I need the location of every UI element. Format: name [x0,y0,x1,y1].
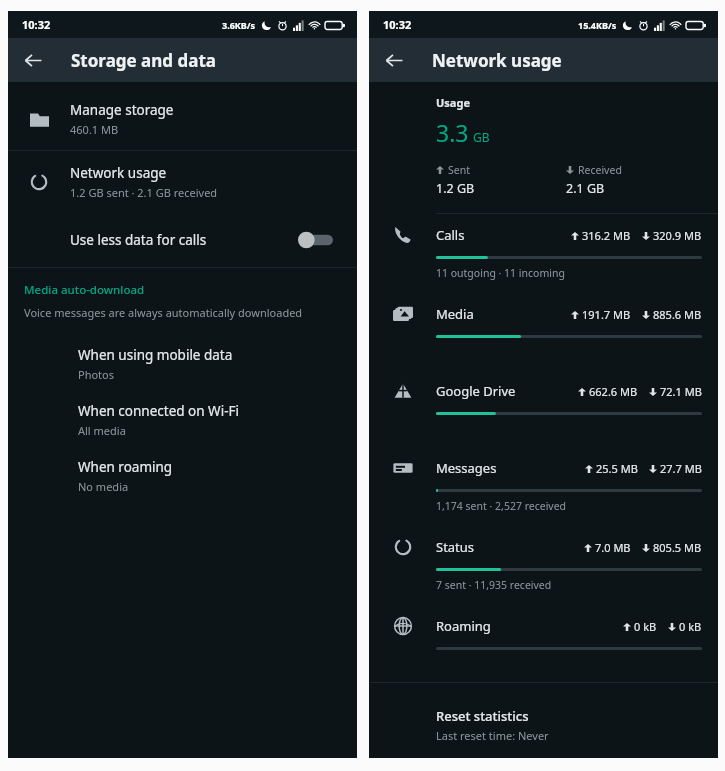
staticText: All media [78,423,126,438]
staticText: Media [436,305,571,323]
staticText: When using mobile data [78,346,233,364]
staticText: Received [578,163,622,177]
staticText: 7.0 MB [595,540,631,555]
button[interactable]: Messages [369,447,718,526]
staticText: Manage storage [70,101,174,119]
staticText: Storage and data [71,49,217,72]
staticText: 25.5 MB [596,461,638,476]
button[interactable]: Manage storage [8,88,357,150]
staticText: 0 kB [634,619,657,634]
staticText: Usage [436,95,470,110]
button[interactable]: Roaming [369,605,718,682]
staticText: Messages [436,459,585,477]
staticText: 191.7 MB [582,307,631,322]
staticText: Status [436,538,584,556]
staticText: 316.2 MB [582,228,631,243]
button[interactable]: Calls [369,214,718,293]
staticText: 2.1 GB [566,180,605,197]
staticText: 1.2 GB [436,180,475,197]
staticText: Sent [448,163,470,177]
staticText: Media auto-download [24,282,145,298]
staticText: 805.5 MB [653,540,702,555]
button[interactable]: Media [369,293,718,370]
staticText: 11 outgoing · 11 incoming [436,266,565,280]
staticText: 15.4KB/s [578,19,617,31]
button[interactable]: Reset statistics [369,703,718,749]
staticText: Voice messages are always automatically … [24,305,303,320]
staticText: When connected on Wi-Fi [78,402,239,420]
staticText: Roaming [436,617,623,635]
button[interactable]: When roaming [8,448,357,504]
staticText: Google Drive [436,382,578,400]
staticText: 1,174 sent · 2,527 received [436,499,567,513]
staticText: Last reset time: Never [436,728,549,743]
staticText: 27.7 MB [660,461,702,476]
button[interactable]: Network usage [8,151,357,213]
button[interactable]: Google Drive [369,370,718,447]
button[interactable]: Use less data for calls [8,213,357,267]
button[interactable]: When connected on Wi-Fi [8,392,357,448]
staticText: When roaming [78,458,173,476]
staticText: 10:32 [383,17,412,32]
staticText: 460.1 MB [70,122,119,137]
button[interactable]: Back [377,43,411,77]
staticText: Calls [436,226,571,244]
staticText: GB [473,129,490,145]
staticText: 320.9 MB [653,228,702,243]
staticText: Reset statistics [436,707,529,725]
staticText: Network usage [432,49,562,72]
staticText: Network usage [70,164,167,182]
staticText: 72.1 MB [660,384,702,399]
staticText: No media [78,479,129,494]
staticText: 1.2 GB sent · 2.1 GB received [70,185,218,200]
button[interactable]: Status [369,526,718,605]
staticText: 7 sent · 11,935 received [436,578,552,592]
staticText: 885.6 MB [653,307,702,322]
staticText: Photos [78,367,115,382]
staticText: 10:32 [22,17,51,32]
button[interactable]: Back [16,43,50,77]
staticText: 662.6 MB [589,384,638,399]
staticText: 3.3 [436,117,469,148]
staticText: 0 kB [679,619,702,634]
staticText: Use less data for calls [70,231,298,249]
button[interactable]: When using mobile data [8,336,357,392]
staticText: 3.6KB/s [222,19,256,31]
